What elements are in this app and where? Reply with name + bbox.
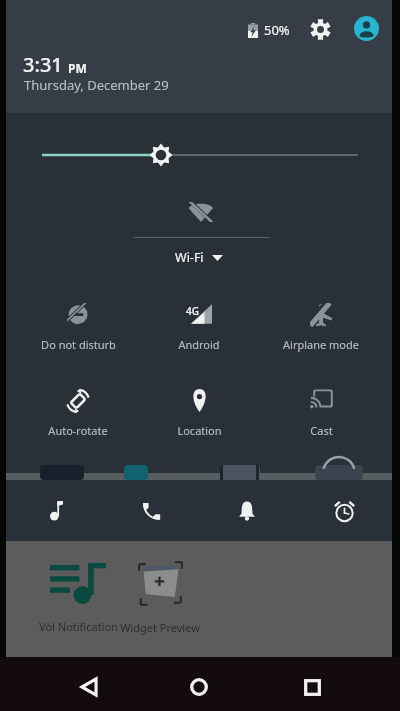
staticText: Do not disturb <box>41 337 116 352</box>
button[interactable]: Brightness <box>6 134 392 176</box>
button[interactable]: Recent apps <box>289 664 335 710</box>
button[interactable]: Do not disturb <box>26 297 130 352</box>
button[interactable]: User account <box>354 16 379 41</box>
staticText: Auto-rotate <box>48 423 108 438</box>
staticText: Thursday, December 29 <box>24 76 169 94</box>
button[interactable]: Call volume <box>127 487 175 535</box>
staticText: 3:31 <box>23 51 63 78</box>
staticText: Vol Notification <box>39 619 118 634</box>
button[interactable]: Alarm volume <box>320 487 368 535</box>
button[interactable]: Vol Notification <box>28 563 128 634</box>
button[interactable]: Notification volume <box>223 487 271 535</box>
button[interactable]: Wi-Fi <box>165 244 233 271</box>
button[interactable]: Home <box>176 664 222 710</box>
button[interactable]: Auto-rotate <box>26 383 130 438</box>
staticText: Location <box>177 423 222 438</box>
staticText: Android <box>178 337 220 352</box>
button[interactable]: Widget Preview <box>116 558 204 635</box>
button[interactable]: 4G <box>147 297 251 352</box>
staticText: 4G <box>186 304 199 318</box>
staticText: Wi-Fi <box>175 249 204 266</box>
staticText: PM <box>68 60 87 76</box>
button[interactable]: Settings <box>305 14 335 44</box>
staticText: Airplane mode <box>283 337 359 352</box>
button[interactable]: Media volume <box>32 487 80 535</box>
staticText: Widget Preview <box>120 620 200 635</box>
button[interactable]: Back <box>66 664 112 710</box>
button[interactable]: Airplane mode <box>269 297 373 352</box>
staticText: Cast <box>310 423 333 438</box>
button[interactable]: Cast <box>269 383 373 438</box>
staticText: 50% <box>264 21 290 39</box>
button[interactable]: Location <box>147 383 251 438</box>
